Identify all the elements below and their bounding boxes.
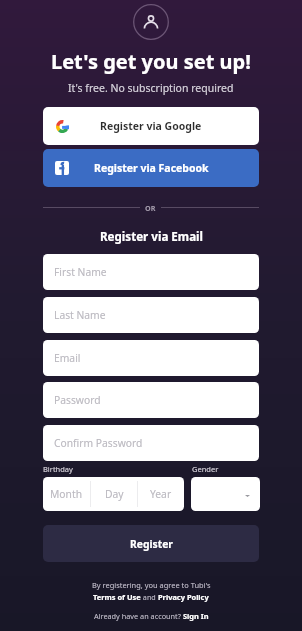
staticText: Register via Google [100, 119, 202, 133]
staticText: and [141, 592, 158, 602]
staticText: Register via Facebook [94, 161, 209, 175]
staticText: Day [105, 487, 124, 501]
staticText: OR [145, 203, 156, 213]
button[interactable]: Select gender [191, 477, 260, 511]
staticText: Year [150, 487, 172, 501]
staticText: Month [50, 487, 83, 501]
staticText: Last Name [54, 308, 106, 322]
staticText: Register via Email [100, 229, 203, 245]
staticText: It's free. No subscription required [68, 81, 234, 95]
button[interactable]: Day [91, 477, 137, 511]
staticText: Register [130, 537, 173, 551]
staticText: Gender [192, 464, 219, 474]
button[interactable]: Sign In [183, 611, 209, 621]
staticText: Already have an account? [94, 611, 183, 621]
button[interactable]: First Name [43, 254, 259, 290]
button[interactable]: Last Name [43, 297, 259, 333]
staticText: Email [54, 351, 81, 365]
staticText: Let's get you set up! [51, 48, 251, 75]
button[interactable]: Year [138, 477, 184, 511]
button[interactable]: Password [43, 382, 259, 418]
button[interactable]: Email [43, 340, 259, 376]
staticText: By registering, you agree to Tubi's [92, 580, 211, 590]
button[interactable]: Month [43, 477, 90, 511]
staticText: Password [54, 393, 101, 407]
button[interactable]: Confirm Password [43, 425, 259, 461]
button[interactable]: Terms of Use [93, 592, 141, 602]
button[interactable]: Register via Google [43, 107, 259, 145]
other: Profile [133, 4, 169, 40]
button[interactable]: Privacy Policy [158, 592, 209, 602]
staticText: Confirm Password [54, 436, 143, 450]
staticText: Birthday [43, 464, 73, 474]
button[interactable]: Register [43, 525, 259, 562]
button[interactable]: Register via Facebook [43, 149, 259, 187]
staticText: First Name [54, 265, 107, 279]
